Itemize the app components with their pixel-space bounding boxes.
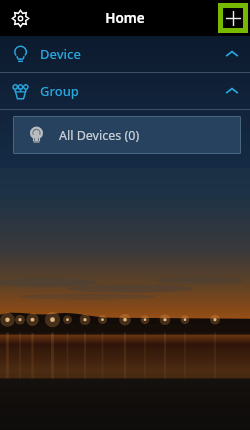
button[interactable]: Add	[223, 8, 243, 28]
button[interactable]: Device	[0, 36, 250, 72]
button[interactable]: All Devices (0)	[13, 116, 241, 154]
staticText: Home	[105, 9, 145, 27]
button[interactable]: Settings	[7, 5, 33, 31]
button[interactable]: Group	[0, 73, 250, 109]
staticText: All Devices (0)	[59, 127, 140, 144]
staticText: Device	[40, 45, 81, 63]
staticText: Group	[40, 82, 79, 100]
